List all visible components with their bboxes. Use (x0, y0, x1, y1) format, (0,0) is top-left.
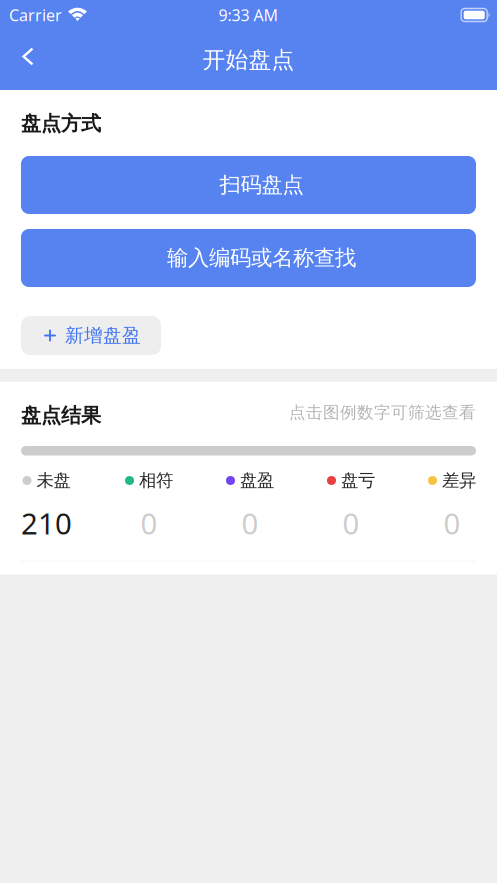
staticText: 盘盈 (240, 470, 274, 491)
staticText: 输入编码或名称查找 (167, 245, 356, 271)
staticText: 相符 (139, 470, 173, 491)
staticText: 新增盘盈 (65, 324, 141, 347)
staticText: 差异 (442, 470, 476, 491)
button[interactable]: Back (6, 31, 50, 81)
button[interactable]: 新增盘盈 (21, 316, 161, 355)
staticText: 盘点结果 (21, 403, 101, 428)
staticText: 9:33 AM (218, 4, 278, 26)
staticText: 0 (342, 503, 359, 542)
staticText: 盘点方式 (21, 111, 101, 136)
staticText: 0 (443, 503, 460, 542)
button[interactable]: 盘盈 (226, 472, 274, 535)
button[interactable]: 盘亏 (327, 472, 375, 535)
button[interactable]: 扫码盘点 (21, 156, 476, 214)
staticText: 未盘 (36, 470, 70, 491)
staticText: 盘亏 (341, 470, 375, 491)
button[interactable]: 输入编码或名称查找 (21, 229, 476, 287)
button[interactable]: 差异 (428, 472, 476, 535)
staticText: 开始盘点 (202, 46, 294, 74)
staticText: 210 (21, 503, 72, 542)
button[interactable]: 未盘 (21, 472, 72, 535)
staticText: Carrier (9, 4, 62, 26)
staticText: 0 (241, 503, 258, 542)
staticText: 0 (140, 503, 157, 542)
staticText: 点击图例数字可筛选查看 (289, 402, 476, 423)
staticText: 扫码盘点 (219, 172, 303, 198)
button[interactable]: 相符 (125, 472, 173, 535)
